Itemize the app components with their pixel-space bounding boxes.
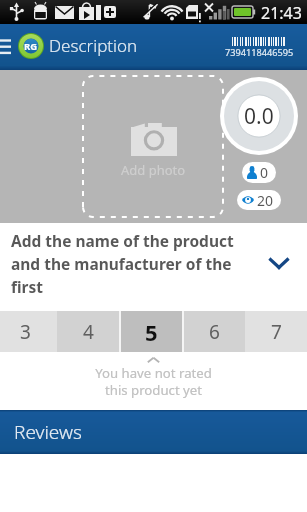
- button[interactable]: 0: [247, 162, 269, 183]
- staticText: 0: [260, 163, 269, 182]
- button[interactable]: Menu: [0, 34, 13, 60]
- button[interactable]: 4: [57, 311, 120, 352]
- button[interactable]: Add the name of the product and the manu…: [0, 223, 307, 311]
- button[interactable]: 6: [183, 311, 245, 352]
- staticText: Reviews: [14, 419, 82, 445]
- staticText: 20: [257, 191, 274, 210]
- staticText: 3: [20, 319, 31, 345]
- button[interactable]: Add photo: [82, 75, 224, 218]
- button[interactable]: 3: [0, 311, 57, 352]
- button[interactable]: Rating 0.0: [220, 77, 298, 155]
- staticText: 6: [209, 319, 220, 345]
- staticText: 21:43: [261, 2, 302, 24]
- staticText: Description: [49, 34, 138, 57]
- staticText: 7394118446595: [225, 46, 294, 59]
- button[interactable]: 7: [245, 311, 307, 352]
- staticText: 4: [83, 319, 94, 345]
- staticText: Add the name of the product and the manu…: [11, 230, 248, 298]
- staticText: RG: [24, 40, 38, 53]
- staticText: 7: [271, 319, 282, 345]
- staticText: 0.0: [244, 102, 274, 131]
- button[interactable]: ReviewGuide logo: [18, 33, 44, 59]
- staticText: You have not rated this product yet: [95, 364, 212, 399]
- button[interactable]: Barcode: [209, 37, 307, 59]
- staticText: Add photo: [121, 161, 186, 179]
- button[interactable]: 20: [242, 190, 274, 210]
- staticText: 5: [145, 317, 158, 347]
- button[interactable]: Reviews: [0, 410, 307, 454]
- button[interactable]: 5: [120, 311, 183, 352]
